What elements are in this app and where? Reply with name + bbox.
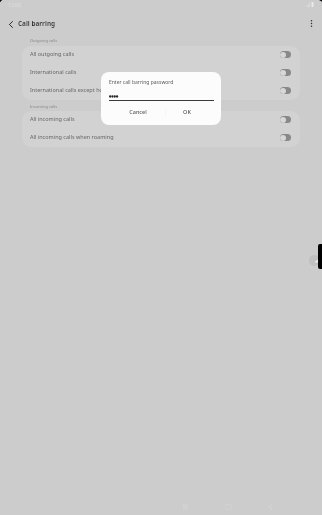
button[interactable]: Navigate up	[1, 13, 21, 33]
staticText: Enter call barring password	[109, 79, 174, 86]
staticText: All incoming calls	[30, 115, 280, 122]
button[interactable]: All outgoing calls	[22, 46, 300, 64]
button[interactable]: All incoming calls when roaming	[22, 129, 300, 147]
staticText: All outgoing calls	[30, 50, 280, 57]
button[interactable]: Edge panel	[318, 244, 322, 269]
staticText: All incoming calls when roaming	[30, 133, 280, 140]
staticText: 12:00	[8, 1, 22, 8]
button[interactable]: Cancel	[101, 106, 165, 125]
staticText: Incoming calls	[30, 104, 58, 109]
staticText: International calls	[30, 68, 280, 75]
button[interactable]: International calls	[22, 64, 300, 82]
staticText: Outgoing calls	[30, 38, 58, 43]
button[interactable]: All incoming calls	[22, 111, 300, 129]
button[interactable]: OK	[166, 106, 221, 125]
staticText: Call barring	[18, 19, 56, 28]
button[interactable]: International calls except home country	[22, 82, 300, 100]
staticText: International calls except home country	[30, 86, 280, 93]
staticText: Cancel	[129, 108, 147, 115]
staticText: OK	[183, 108, 191, 115]
button[interactable]: More options	[301, 13, 321, 33]
